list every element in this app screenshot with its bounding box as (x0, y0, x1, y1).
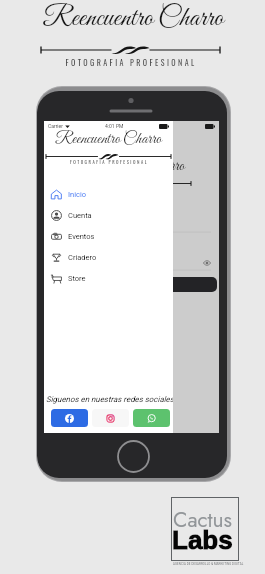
button[interactable]: Instagram (92, 409, 129, 427)
button[interactable]: Eventos (44, 226, 173, 247)
button[interactable]: WhatsApp (133, 409, 170, 427)
staticText: Cactus (173, 505, 233, 535)
button[interactable]: Facebook (51, 409, 88, 427)
staticText: Eventos (68, 232, 95, 241)
staticText: FOTOGRAFIA PROFESIONAL (65, 56, 197, 68)
button[interactable]: Store (44, 268, 173, 289)
staticText: Store (68, 274, 86, 283)
staticText: Criadero (68, 253, 97, 262)
staticText: Inicio (68, 190, 87, 199)
staticText: Siguenos en nuestras redes sociales (46, 395, 173, 404)
staticText: Reencuentro Charro (78, 156, 185, 177)
button[interactable]: Inicio (44, 184, 173, 205)
staticText: AGENCIA DE DESARROLLO & MARKETING DIGITA… (173, 562, 244, 565)
staticText: Cuenta (68, 211, 92, 220)
staticText: Carrier (48, 123, 63, 129)
staticText: Reencuentro Charro (42, 1, 224, 36)
button[interactable]: Criadero (44, 247, 173, 268)
button[interactable]: Cuenta (44, 205, 173, 226)
staticText: Labs (172, 525, 233, 554)
staticText: Reencuentro Charro (55, 129, 162, 150)
staticText: Carrier (48, 123, 63, 129)
staticText: 4:01 PM (105, 123, 124, 129)
staticText: FOTOGRAFIA PROFESIONAL (70, 159, 148, 166)
